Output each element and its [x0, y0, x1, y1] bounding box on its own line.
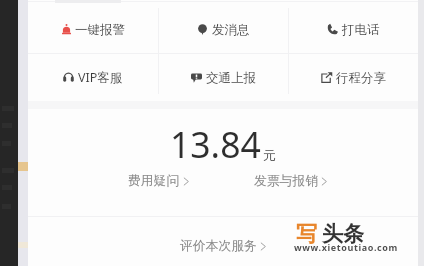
button[interactable]: 打电话 — [288, 6, 418, 53]
button[interactable]: 发消息 — [158, 6, 288, 53]
staticText: 头条 — [322, 221, 364, 247]
button[interactable]: 交通上报 — [158, 54, 288, 101]
staticText: 发消息 — [212, 22, 250, 38]
button[interactable]: 发票与报销 — [254, 173, 327, 189]
staticText: 交通上报 — [206, 70, 256, 86]
staticText: 一键报警 — [75, 22, 125, 38]
staticText: 评价本次服务 — [180, 238, 257, 254]
button[interactable]: 费用疑问 — [128, 173, 189, 189]
staticText: 13.84 — [170, 120, 261, 168]
staticText: www.xietoutiao.com — [294, 241, 398, 253]
staticText: 费用疑问 — [128, 173, 180, 189]
button[interactable]: 行程分享 — [288, 54, 418, 101]
staticText: VIP客服 — [78, 69, 123, 86]
staticText: 写 — [296, 221, 317, 247]
staticText: 发票与报销 — [254, 173, 318, 189]
staticText: 行程分享 — [336, 70, 386, 86]
staticText: 元 — [263, 147, 276, 163]
button[interactable]: VIP客服 — [28, 54, 158, 101]
staticText: 打电话 — [342, 22, 380, 38]
button[interactable]: 一键报警 — [28, 6, 158, 53]
button[interactable]: 评价本次服务 — [180, 238, 266, 254]
